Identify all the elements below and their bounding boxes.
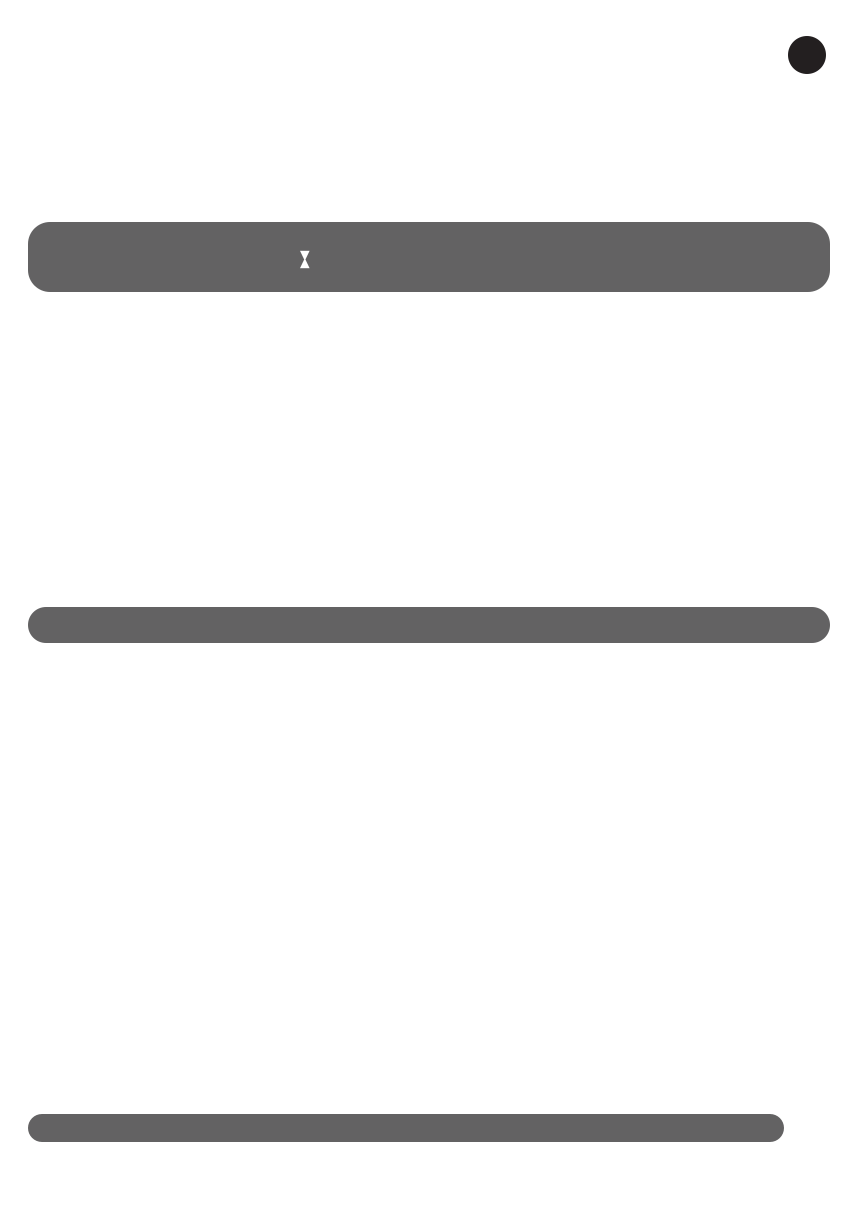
button[interactable]: Account <box>788 36 826 74</box>
button[interactable]: Loading <box>28 222 830 292</box>
